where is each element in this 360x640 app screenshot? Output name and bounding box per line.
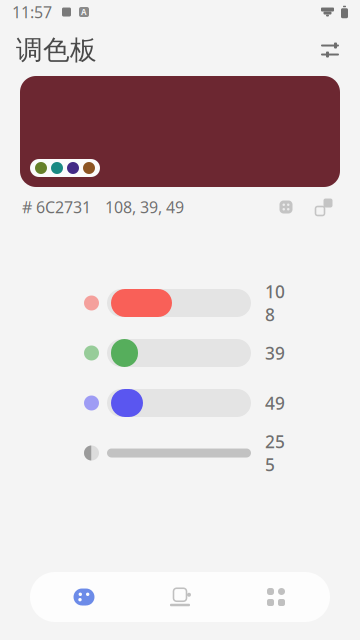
button[interactable]: Settings <box>310 30 350 70</box>
staticText: 49 <box>265 391 285 414</box>
staticText: 调色板 <box>16 34 97 66</box>
button[interactable]: Copy <box>310 193 338 221</box>
staticText: 39 <box>265 341 285 364</box>
staticText: 11:57 <box>12 1 52 23</box>
button[interactable]: Fill <box>132 572 228 622</box>
staticText: 108 <box>265 280 285 326</box>
button[interactable]: Palette <box>36 572 132 622</box>
button[interactable]: Collections <box>228 572 324 622</box>
staticText: 108, 39, 49 <box>105 196 184 218</box>
staticText: # 6C2731 <box>22 196 91 218</box>
button[interactable]: Random color <box>272 193 300 221</box>
staticText: A <box>81 7 87 17</box>
staticText: 255 <box>265 430 285 476</box>
